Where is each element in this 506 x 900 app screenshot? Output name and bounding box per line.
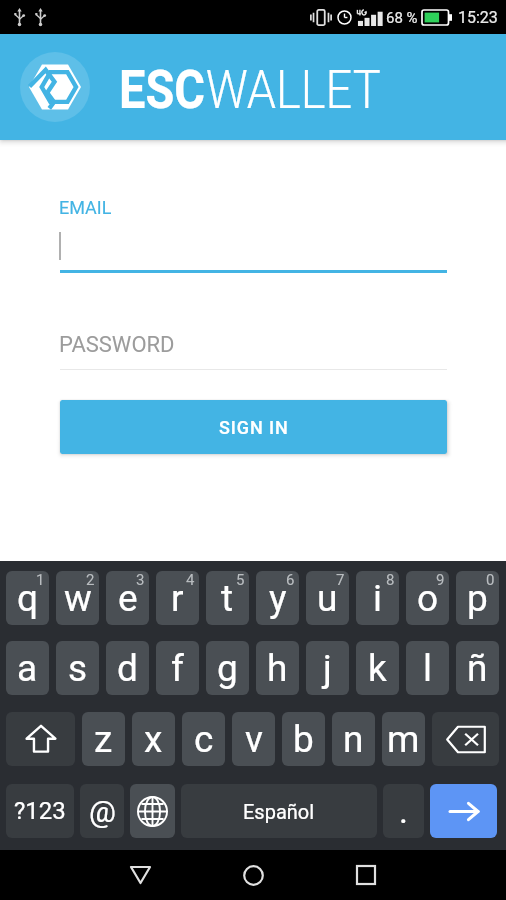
staticText: p: [467, 577, 488, 620]
staticText: WALLET: [206, 59, 381, 121]
button[interactable]: z: [82, 712, 125, 766]
staticText: u: [317, 577, 338, 620]
button[interactable]: g: [206, 641, 249, 695]
staticText: g: [217, 647, 238, 690]
button[interactable]: Back: [115, 850, 165, 900]
button[interactable]: f: [156, 641, 199, 695]
button[interactable]: r: [156, 571, 199, 625]
button[interactable]: w: [56, 571, 99, 625]
staticText: h: [267, 647, 288, 690]
button[interactable]: @: [80, 784, 124, 838]
button[interactable]: s: [56, 641, 99, 695]
button[interactable]: Español: [181, 784, 377, 838]
staticText: 68 %: [386, 9, 418, 27]
staticText: a: [17, 647, 38, 690]
button[interactable]: l: [406, 641, 449, 695]
button[interactable]: SIGN IN: [60, 400, 447, 454]
staticText: w: [64, 577, 92, 620]
staticText: s: [68, 647, 88, 690]
button[interactable]: m: [382, 712, 425, 766]
staticText: EMAIL: [59, 197, 112, 218]
staticText: j: [323, 647, 332, 690]
staticText: t: [221, 577, 234, 620]
button[interactable]: ñ: [456, 641, 499, 695]
staticText: f: [171, 647, 184, 690]
staticText: 3: [136, 571, 145, 589]
button[interactable]: v: [232, 712, 275, 766]
button[interactable]: t: [206, 571, 249, 625]
button[interactable]: .: [383, 784, 424, 838]
staticText: SIGN IN: [219, 417, 289, 438]
staticText: ?123: [14, 797, 66, 825]
staticText: q: [17, 577, 39, 620]
button[interactable]: x: [132, 712, 175, 766]
staticText: 2: [86, 571, 95, 589]
button[interactable]: h: [256, 641, 299, 695]
staticText: 8: [386, 571, 395, 589]
button[interactable]: p: [456, 571, 499, 625]
staticText: .: [399, 791, 408, 831]
staticText: b: [293, 718, 314, 761]
button[interactable]: a: [6, 641, 49, 695]
staticText: 9: [436, 571, 445, 589]
staticText: 6: [286, 571, 295, 589]
staticText: e: [118, 577, 138, 620]
button[interactable]: k: [356, 641, 399, 695]
button[interactable]: e: [106, 571, 149, 625]
staticText: ñ: [467, 647, 488, 690]
button[interactable]: d: [106, 641, 149, 695]
staticText: y: [269, 577, 287, 620]
button[interactable]: u: [306, 571, 349, 625]
button[interactable]: Recents: [341, 850, 391, 900]
staticText: n: [343, 718, 364, 761]
staticText: i: [373, 577, 382, 620]
button[interactable]: Backspace: [432, 712, 499, 766]
staticText: Español: [243, 800, 315, 823]
staticText: 7: [336, 571, 345, 589]
staticText: k: [368, 647, 387, 690]
staticText: c: [194, 718, 214, 761]
button[interactable]: y: [256, 571, 299, 625]
button[interactable]: Change language: [130, 784, 175, 838]
staticText: ESC: [119, 59, 206, 121]
staticText: 0: [486, 571, 495, 589]
staticText: m: [387, 718, 420, 761]
staticText: 4: [186, 571, 195, 589]
staticText: 1: [36, 571, 45, 589]
button[interactable]: n: [332, 712, 375, 766]
button[interactable]: b: [282, 712, 325, 766]
staticText: PASSWORD: [59, 332, 175, 358]
button[interactable]: o: [406, 571, 449, 625]
staticText: 15:23: [458, 8, 498, 27]
staticText: d: [117, 647, 138, 690]
staticText: v: [245, 718, 263, 761]
button[interactable]: Home: [228, 850, 278, 900]
staticText: z: [94, 718, 113, 761]
button[interactable]: q: [6, 571, 49, 625]
staticText: 5: [236, 571, 245, 589]
staticText: l: [423, 647, 432, 690]
button[interactable]: ?123: [6, 784, 74, 838]
staticText: o: [417, 577, 439, 620]
button[interactable]: j: [306, 641, 349, 695]
staticText: r: [171, 577, 184, 620]
button[interactable]: Shift: [6, 712, 75, 766]
button[interactable]: Enter: [430, 784, 497, 838]
button[interactable]: c: [182, 712, 225, 766]
button[interactable]: i: [356, 571, 399, 625]
staticText: x: [144, 718, 163, 761]
staticText: @: [89, 794, 116, 829]
